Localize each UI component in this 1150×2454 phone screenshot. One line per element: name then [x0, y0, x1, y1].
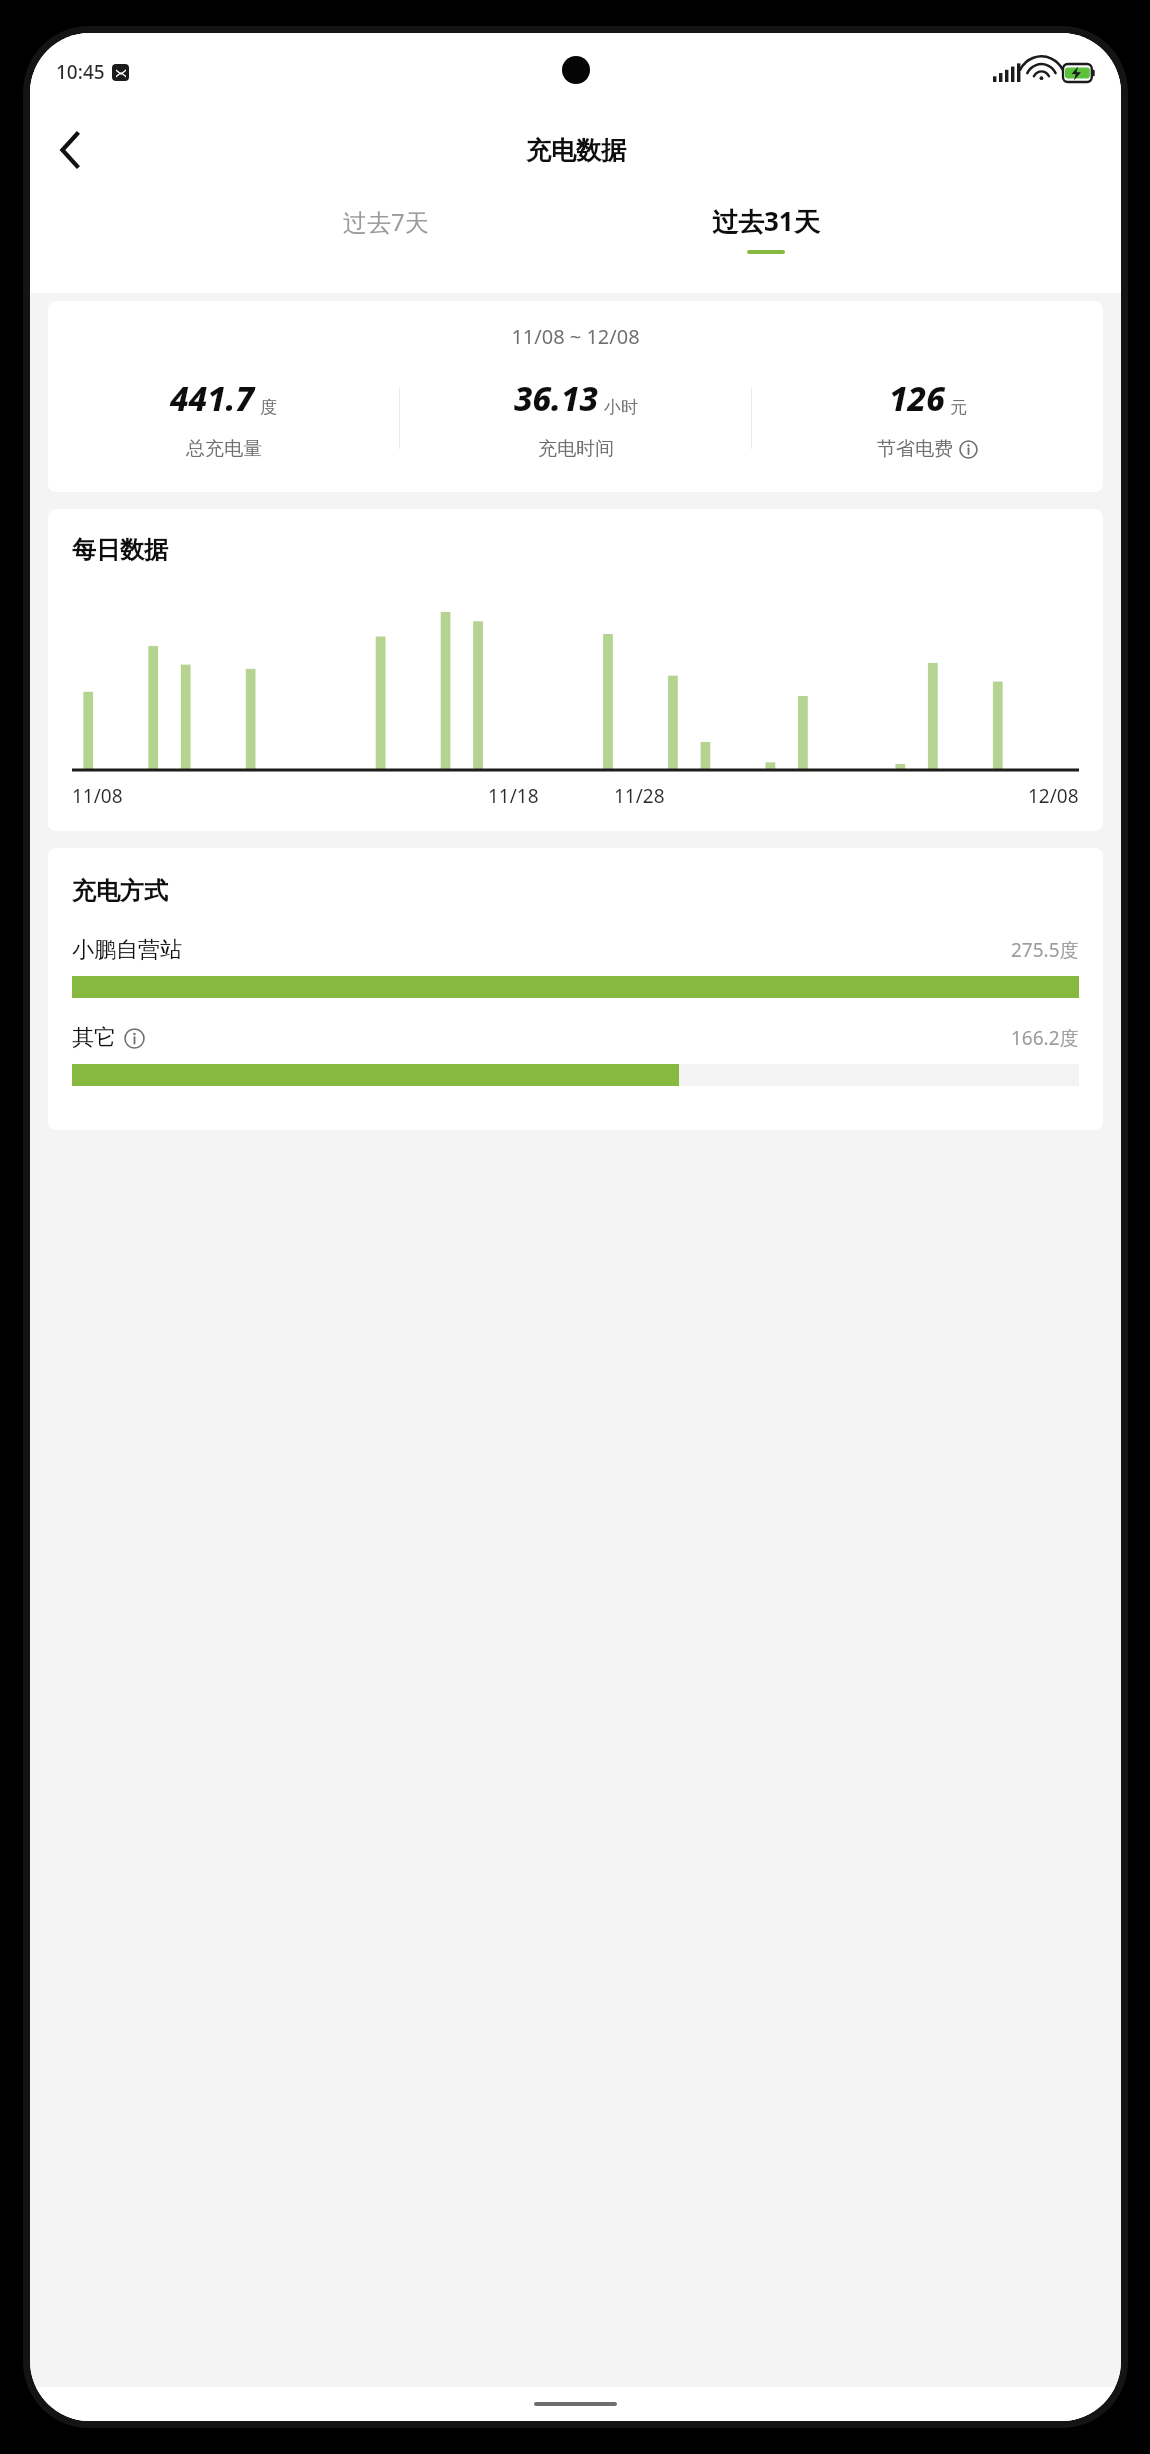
staticText: 其它	[72, 1024, 116, 1052]
staticText: 充电数据	[526, 135, 626, 166]
staticText: 节省电费	[877, 437, 953, 461]
staticText: 充电方式	[72, 876, 168, 906]
staticText: 过去7天	[343, 205, 429, 238]
staticText: 441.7	[170, 376, 255, 421]
other: Info	[124, 1028, 145, 1049]
staticText: 11/08	[72, 783, 123, 809]
staticText: 11/18	[488, 783, 539, 809]
staticText: 充电时间	[538, 437, 614, 461]
staticText: 10:45	[56, 59, 105, 85]
staticText: 过去31天	[712, 203, 820, 239]
staticText: 166.2度	[1011, 1025, 1079, 1051]
button[interactable]: 过去31天	[576, 189, 956, 275]
staticText: 总充电量	[186, 437, 262, 461]
staticText: 元	[950, 397, 967, 418]
button[interactable]: 其它	[72, 1024, 1079, 1086]
staticText: 11/28	[614, 783, 665, 809]
staticText: 度	[260, 397, 277, 418]
button[interactable]: Back	[42, 122, 98, 178]
other: Info	[959, 440, 978, 459]
button[interactable]: 过去7天	[196, 189, 576, 275]
staticText: 126	[889, 376, 945, 421]
staticText: 12/08	[1028, 783, 1079, 809]
button[interactable]: 小鹏自营站	[72, 936, 1079, 998]
staticText: 36.13	[514, 376, 599, 421]
staticText: 11/08 ~ 12/08	[48, 323, 1103, 350]
staticText: 小鹏自营站	[72, 936, 182, 964]
staticText: 275.5度	[1011, 937, 1079, 963]
staticText: 小时	[604, 397, 638, 418]
staticText: 每日数据	[72, 535, 168, 565]
